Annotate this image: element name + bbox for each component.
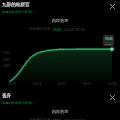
- staticText: 电视剧热度排行第7名 >: [2, 10, 36, 14]
- staticText: (2024/06/16): [64, 27, 86, 32]
- button[interactable]: Close: [106, 91, 119, 104]
- staticText: 内容热度: [0, 109, 120, 114]
- staticText: 6000: [3, 58, 11, 62]
- staticText: 9000: [3, 51, 11, 55]
- staticText: 孤舟: [2, 93, 12, 99]
- staticText: 9545: [105, 36, 113, 41]
- staticText: 内容热度: [0, 18, 120, 23]
- staticText: 06/22: [108, 82, 117, 86]
- button[interactable]: Close: [106, 0, 119, 13]
- staticText: 06/22: [105, 42, 112, 45]
- staticText: 06/10: [8, 82, 17, 86]
- staticText: (2024/08/30): [64, 118, 86, 120]
- staticText: 九部的检察官: [2, 2, 30, 8]
- button[interactable]: 九部的检察官: [2, 2, 36, 14]
- staticText: 历史最高热度: [29, 27, 51, 32]
- staticText: 电视剧热度排行第3名 >: [2, 101, 36, 105]
- staticText: 历史最高热度: [29, 118, 51, 120]
- staticText: 06/19: [83, 82, 92, 86]
- button[interactable]: 孤舟: [2, 93, 36, 105]
- staticText: 06/13: [33, 82, 42, 86]
- staticText: 9545: [53, 27, 62, 32]
- staticText: 3000: [3, 64, 11, 68]
- staticText: 06/16: [58, 82, 67, 86]
- staticText: 9912: [53, 118, 62, 120]
